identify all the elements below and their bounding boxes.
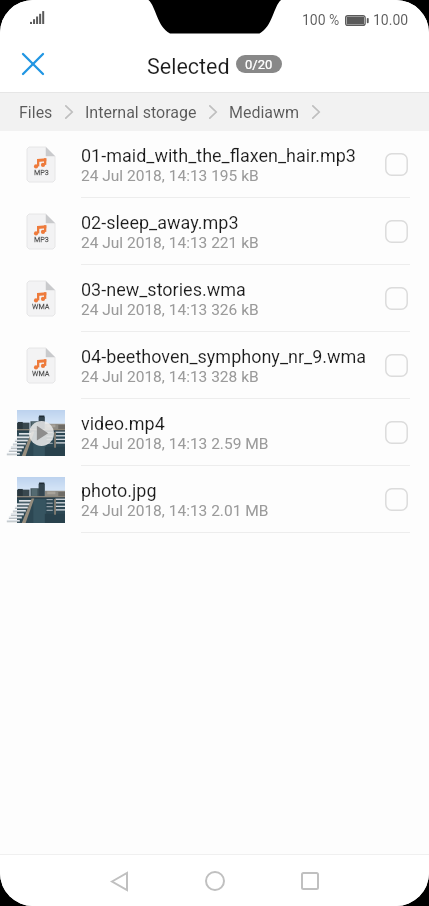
staticText: 0/20: [245, 57, 273, 72]
staticText: 01-maid_with_the_flaxen_hair.mp3: [81, 145, 356, 166]
staticText: 24 Jul 2018, 14:13 2.59 MB: [81, 435, 269, 453]
staticText: photo.jpg: [81, 480, 157, 501]
button[interactable]: Select 04-beethoven_symphony_nr_9.wma: [368, 340, 424, 390]
button[interactable]: WMA: [0, 265, 429, 332]
staticText: WMA: [32, 369, 50, 377]
staticText: MP3: [34, 235, 49, 243]
staticText: 02-sleep_away.mp3: [81, 212, 239, 233]
button[interactable]: Mediawm: [229, 103, 300, 122]
staticText: 10.00: [373, 12, 409, 28]
button[interactable]: Home: [190, 856, 240, 906]
staticText: 24 Jul 2018, 14:13 326 kB: [81, 301, 259, 319]
button[interactable]: MP3: [0, 131, 429, 198]
staticText: 24 Jul 2018, 14:13 221 kB: [81, 234, 259, 252]
staticText: Selected: [147, 54, 230, 79]
button[interactable]: Internal storage: [85, 103, 197, 122]
button[interactable]: MP3: [0, 198, 429, 265]
staticText: 03-new_stories.wma: [81, 279, 246, 300]
staticText: 24 Jul 2018, 14:13 195 kB: [81, 167, 259, 185]
staticText: video.mp4: [81, 413, 165, 434]
staticText: Mediawm: [229, 103, 300, 122]
button[interactable]: video.mp4: [0, 399, 429, 466]
staticText: 24 Jul 2018, 14:13 328 kB: [81, 368, 259, 386]
button[interactable]: Files: [19, 103, 53, 122]
button[interactable]: Back: [94, 856, 144, 906]
button[interactable]: Select 03-new_stories.wma: [368, 273, 424, 323]
staticText: 04-beethoven_symphony_nr_9.wma: [81, 346, 367, 367]
button[interactable]: Select 01-maid_with_the_flaxen_hair.mp3: [368, 139, 424, 189]
button[interactable]: WMA: [0, 332, 429, 399]
button[interactable]: photo.jpg: [0, 466, 429, 533]
staticText: WMA: [32, 302, 50, 310]
button[interactable]: Recent apps: [285, 856, 335, 906]
staticText: 24 Jul 2018, 14:13 2.01 MB: [81, 502, 269, 520]
staticText: Files: [19, 103, 53, 122]
staticText: MP3: [34, 168, 49, 176]
staticText: 100 %: [302, 12, 340, 28]
button[interactable]: Close selection: [10, 41, 56, 87]
button[interactable]: Select photo.jpg: [368, 474, 424, 524]
button[interactable]: Select 02-sleep_away.mp3: [368, 206, 424, 256]
staticText: Internal storage: [85, 103, 197, 122]
button[interactable]: Select video.mp4: [368, 407, 424, 457]
